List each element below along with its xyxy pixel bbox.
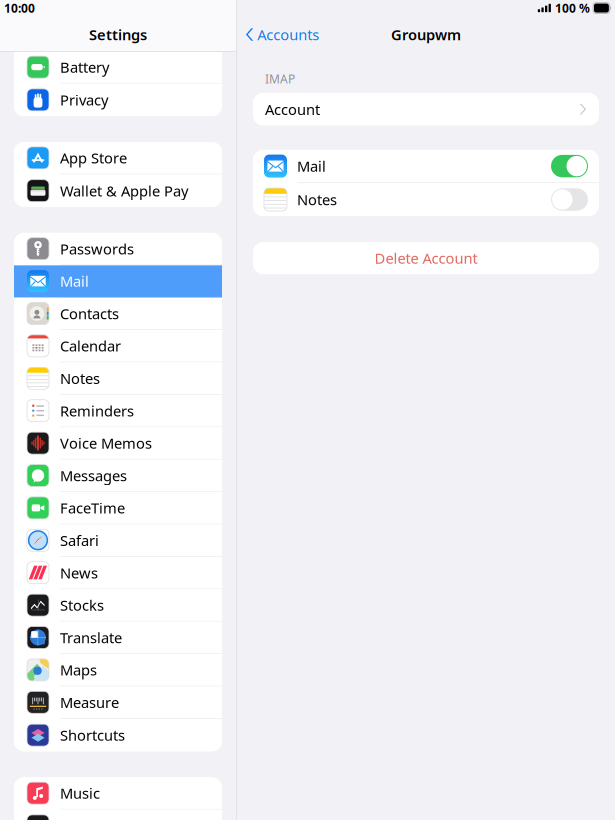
- button[interactable]: Mail: [14, 265, 222, 298]
- staticText: Battery: [60, 57, 109, 77]
- button[interactable]: Wallet & Apple Pay: [14, 174, 222, 207]
- button[interactable]: Notes: [551, 188, 588, 211]
- staticText: Mail: [297, 156, 326, 176]
- staticText: Translate: [60, 628, 122, 647]
- button[interactable]: Calendar: [14, 330, 222, 362]
- staticText: News: [60, 563, 98, 582]
- button[interactable]: Reminders: [14, 395, 222, 427]
- button[interactable]: Safari: [14, 524, 222, 557]
- staticText: Maps: [60, 660, 97, 680]
- staticText: Calendar: [60, 336, 121, 356]
- staticText: FaceTime: [60, 498, 125, 518]
- staticText: Voice Memos: [60, 433, 152, 453]
- staticText: IMAP: [265, 71, 295, 87]
- staticText: Stocks: [60, 595, 104, 615]
- button[interactable]: Shortcuts: [14, 719, 222, 751]
- staticText: Notes: [60, 369, 100, 388]
- staticText: App Store: [60, 148, 127, 168]
- button[interactable]: Mail: [253, 150, 599, 183]
- button[interactable]: Music: [14, 777, 222, 810]
- staticText: Accounts: [257, 25, 319, 44]
- staticText: Wallet & Apple Pay: [60, 181, 188, 200]
- staticText: 100 %: [555, 0, 590, 16]
- staticText: Passwords: [60, 239, 134, 258]
- staticText: Reminders: [60, 401, 134, 420]
- button[interactable]: News: [14, 557, 222, 589]
- button[interactable]: Accounts: [237, 19, 319, 50]
- button[interactable]: Stocks: [14, 589, 222, 622]
- button[interactable]: Notes: [14, 362, 222, 395]
- staticText: Settings: [89, 25, 147, 44]
- staticText: Contacts: [60, 304, 119, 323]
- button[interactable]: Mail: [551, 155, 588, 177]
- button[interactable]: Account: [253, 93, 599, 125]
- button[interactable]: tv: [14, 810, 222, 820]
- staticText: Delete Account: [374, 248, 477, 268]
- button[interactable]: Voice Memos: [14, 427, 222, 460]
- button[interactable]: Privacy: [14, 84, 222, 116]
- button[interactable]: Translate: [14, 622, 222, 654]
- button[interactable]: Passwords: [14, 233, 222, 265]
- button[interactable]: Contacts: [14, 298, 222, 330]
- button[interactable]: Hidden: [14, 19, 222, 51]
- staticText: Messages: [60, 466, 127, 485]
- button[interactable]: Maps: [14, 654, 222, 686]
- staticText: Music: [60, 783, 100, 803]
- button[interactable]: Battery: [14, 51, 222, 84]
- staticText: Account: [265, 99, 320, 119]
- button[interactable]: Measure: [14, 686, 222, 719]
- staticText: Notes: [297, 190, 337, 209]
- staticText: Shortcuts: [60, 725, 125, 745]
- staticText: Hidden: [60, 25, 110, 44]
- staticText: Privacy: [60, 90, 108, 110]
- button[interactable]: App Store: [14, 142, 222, 174]
- button[interactable]: Notes: [253, 183, 599, 216]
- button[interactable]: Delete Account: [253, 242, 599, 274]
- staticText: 10:00: [4, 0, 35, 16]
- staticText: Mail: [60, 271, 89, 291]
- staticText: Safari: [60, 531, 99, 550]
- button[interactable]: FaceTime: [14, 492, 222, 524]
- staticText: Measure: [60, 693, 119, 712]
- staticText: Groupwm: [391, 25, 461, 44]
- button[interactable]: Messages: [14, 460, 222, 492]
